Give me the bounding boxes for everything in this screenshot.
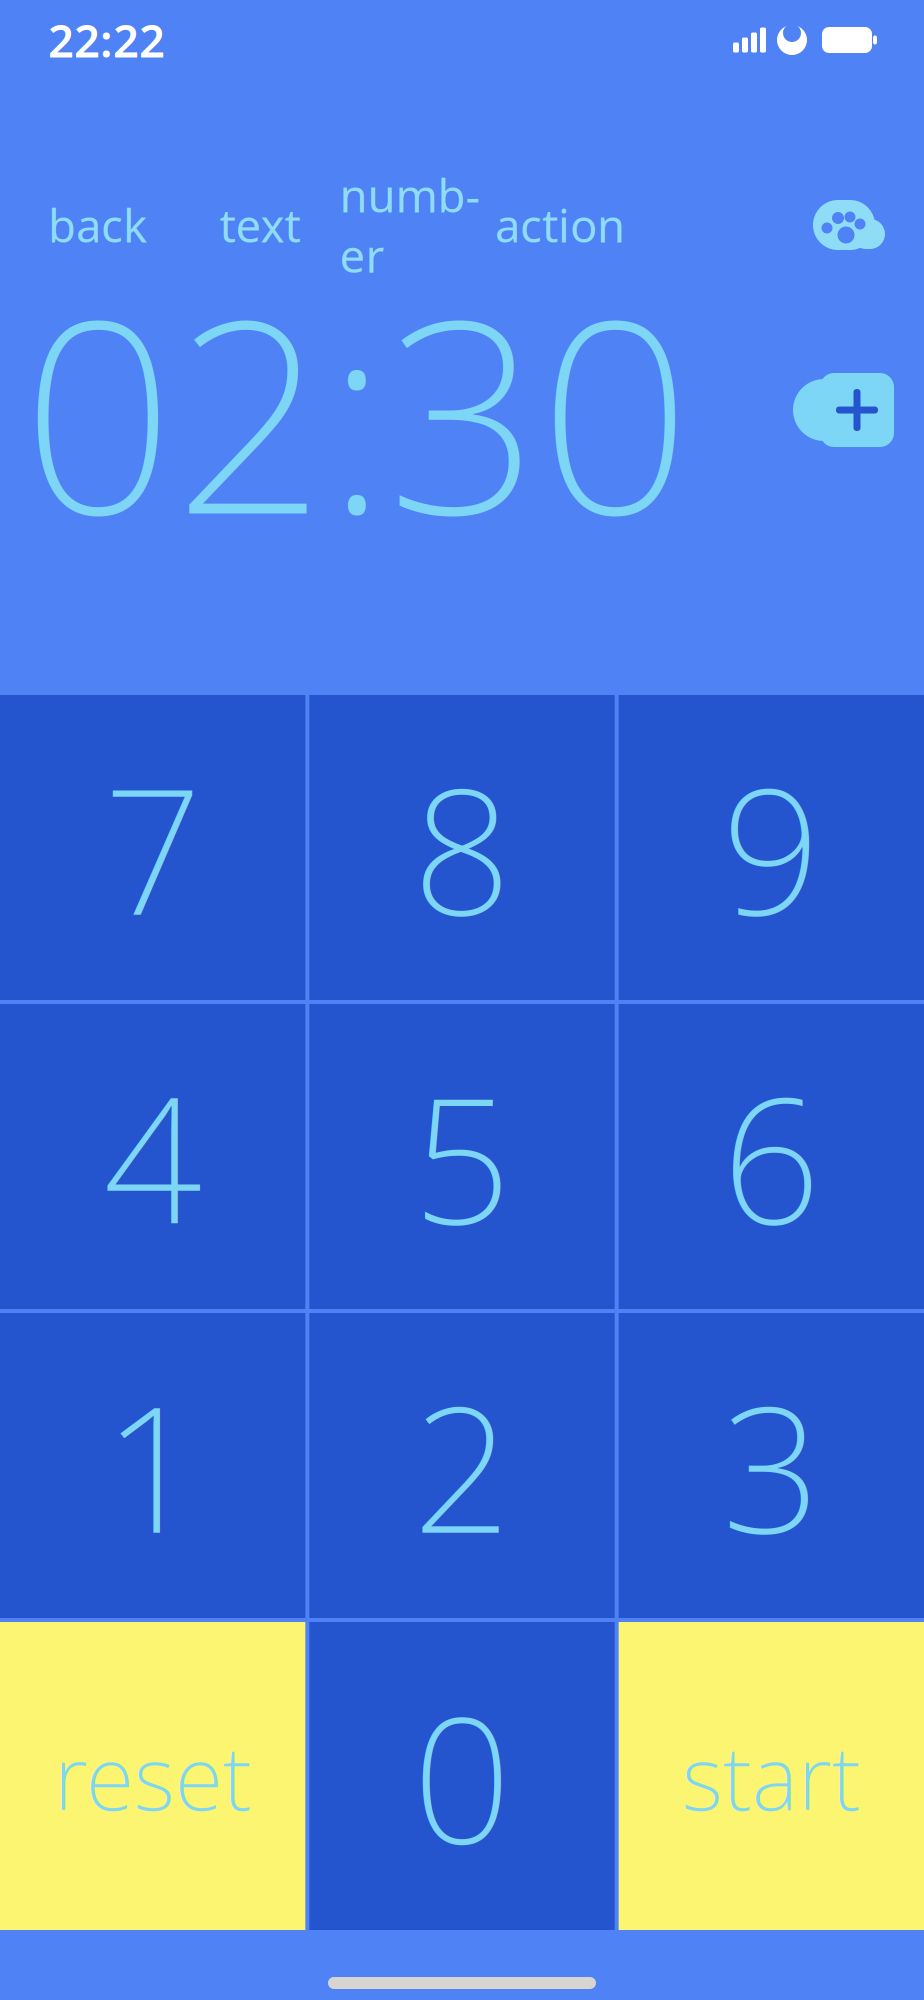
staticText: action <box>495 195 625 255</box>
button[interactable]: 0 <box>309 1622 615 1930</box>
button[interactable]: 2 <box>309 1313 615 1618</box>
staticText: 5 <box>412 1041 511 1272</box>
button[interactable]: number <box>335 190 485 260</box>
staticText: 0 <box>412 1661 511 1891</box>
button[interactable]: 3 <box>619 1313 924 1618</box>
staticText: 8 <box>412 732 511 963</box>
button[interactable]: 5 <box>309 1004 615 1309</box>
button[interactable]: start <box>619 1622 924 1930</box>
staticText: reset <box>54 1718 252 1834</box>
staticText: 22:22 <box>48 10 165 70</box>
button[interactable]: reset <box>0 1622 305 1930</box>
button[interactable]: 7 <box>0 695 305 1000</box>
button[interactable]: action <box>485 190 635 260</box>
button[interactable]: back <box>10 190 185 260</box>
staticText: 9 <box>722 732 821 963</box>
staticText: 6 <box>722 1041 821 1272</box>
button[interactable]: 8 <box>309 695 615 1000</box>
staticText: 1 <box>103 1350 202 1581</box>
staticText: 4 <box>103 1041 202 1272</box>
button[interactable]: Delete <box>792 371 896 449</box>
button[interactable]: text <box>185 190 335 260</box>
button[interactable]: 6 <box>619 1004 924 1309</box>
staticText: text <box>219 195 300 255</box>
staticText: back <box>48 195 147 255</box>
staticText: 02:30 <box>22 233 691 587</box>
staticText: 7 <box>103 732 202 963</box>
staticText: 3 <box>722 1350 821 1581</box>
button[interactable]: Theme colors <box>794 190 894 260</box>
staticText: 2 <box>412 1350 511 1581</box>
button[interactable]: 9 <box>619 695 924 1000</box>
staticText: number <box>339 165 480 285</box>
button[interactable]: 1 <box>0 1313 305 1618</box>
staticText: start <box>682 1718 861 1834</box>
button[interactable]: 4 <box>0 1004 305 1309</box>
